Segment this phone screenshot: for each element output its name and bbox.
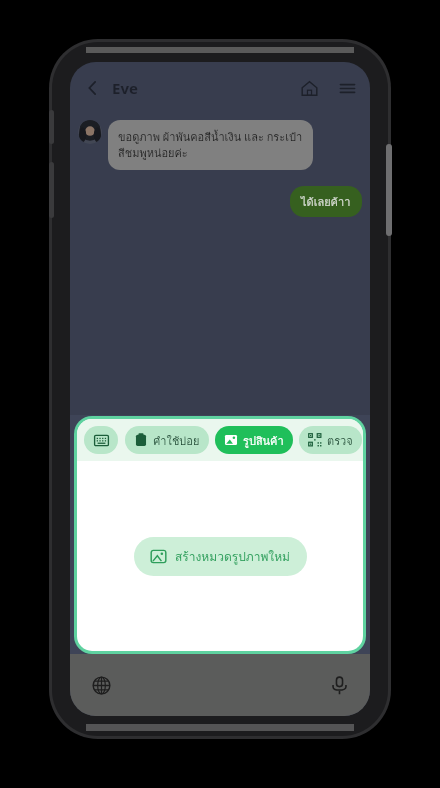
button[interactable]: Voice input [322, 668, 356, 702]
staticText: ได้เลยค้าา [301, 193, 351, 210]
button[interactable]: คำใช้บ่อย [125, 426, 209, 454]
button[interactable]: ขอดูภาพ ผ้าพันคอสีน้ำเงิน และ กระเป๋า สี… [108, 120, 313, 170]
staticText: สร้างหมวดรูปภาพใหม่ [175, 547, 291, 566]
staticText: ขอดูภาพ ผ้าพันคอสีน้ำเงิน และ กระเป๋า สี… [118, 128, 303, 162]
button[interactable]: ตรวจ [299, 426, 362, 454]
button[interactable]: รูปสินค้า [215, 426, 293, 454]
button[interactable]: Home [292, 71, 326, 105]
staticText: คำใช้บ่อย [153, 432, 200, 449]
staticText: Eve [112, 78, 138, 98]
button[interactable]: Back [76, 71, 110, 105]
button[interactable]: Keyboard [84, 426, 118, 454]
staticText: รูปสินค้า [243, 432, 284, 449]
button[interactable]: ได้เลยค้าา [290, 186, 362, 217]
staticText: ตรวจ [327, 432, 353, 449]
button[interactable]: Change language [84, 668, 118, 702]
button[interactable]: สร้างหมวดรูปภาพใหม่ [134, 537, 307, 576]
button[interactable]: Menu [330, 71, 364, 105]
